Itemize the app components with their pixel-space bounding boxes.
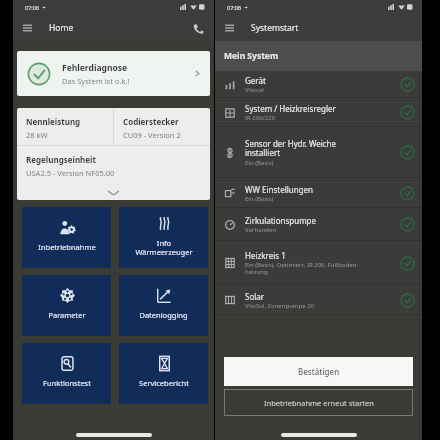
- button[interactable]: Inbetriebnahme erneut starten: [224, 389, 413, 416]
- staticText: Heizkreis 1: [245, 250, 286, 261]
- button[interactable]: Menu: [220, 19, 238, 37]
- staticText: USA2.5 - Version NF05.00: [26, 168, 115, 178]
- staticText: Mein System: [224, 50, 279, 62]
- staticText: Solar: [245, 291, 265, 302]
- staticText: Ein (Basis): [245, 159, 274, 167]
- button[interactable]: Inbetriebnahme: [22, 207, 111, 268]
- staticText: Fehlerdiagnose: [62, 62, 128, 74]
- staticText: Vorhanden: [245, 226, 277, 234]
- staticText: Info Wärmeerzeuger: [135, 238, 193, 257]
- staticText: Nennleistung: [26, 116, 81, 127]
- button[interactable]: Menu: [18, 19, 36, 37]
- staticText: WW Einstellungen: [245, 184, 314, 195]
- staticText: Datenlogging: [139, 310, 188, 320]
- staticText: Ein (Basis): [245, 195, 274, 203]
- staticText: CU09 - Version 2: [123, 130, 181, 140]
- staticText: Vitocal: [245, 86, 264, 94]
- staticText: Inbetriebnahme: [38, 242, 96, 252]
- staticText: Parameter: [48, 310, 86, 320]
- staticText: Home: [49, 22, 74, 34]
- button[interactable]: Bestätigen: [224, 357, 413, 386]
- staticText: Sensor der Hydr. Weiche installiert: [245, 138, 337, 159]
- staticText: Systemstart: [251, 22, 299, 34]
- staticText: Das System ist o.k.!: [62, 76, 130, 86]
- staticText: 07:06: [227, 4, 242, 11]
- button[interactable]: Funktionstest: [22, 343, 111, 404]
- button[interactable]: Parameter: [22, 275, 111, 336]
- staticText: 07:06: [25, 4, 40, 11]
- staticText: 28 kW: [26, 130, 48, 140]
- button[interactable]: Info Wärmeerzeuger: [119, 207, 208, 268]
- staticText: Inbetriebnahme erneut starten: [264, 398, 374, 408]
- button[interactable]: Nennleistung: [17, 108, 210, 200]
- staticText: Funktionstest: [43, 378, 91, 388]
- staticText: Servicebericht: [139, 378, 189, 388]
- staticText: Zirkulationspumpe: [245, 215, 317, 226]
- staticText: Ein (Basis), Optimiert, IR 200, Fußboden…: [245, 261, 359, 276]
- staticText: Regelungseinheit: [26, 154, 96, 165]
- button[interactable]: Call: [190, 20, 206, 36]
- button[interactable]: Fehlerdiagnose: [17, 51, 210, 96]
- staticText: Gerät: [245, 75, 266, 86]
- button[interactable]: Servicebericht: [119, 343, 208, 404]
- staticText: Codierstecker: [123, 116, 179, 127]
- staticText: Bestätigen: [298, 366, 340, 377]
- staticText: IR 200/220: [245, 114, 276, 122]
- staticText: VitoSol, Zonenpumpe 20: [245, 302, 314, 310]
- button[interactable]: Datenlogging: [119, 275, 208, 336]
- staticText: System / Heizkreisregler: [245, 103, 336, 114]
